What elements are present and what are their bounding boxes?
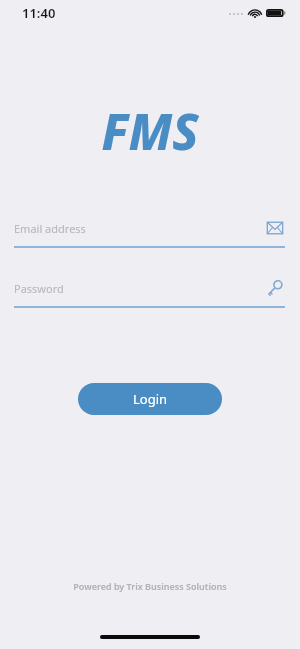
button[interactable]: Email <box>262 215 288 241</box>
staticText: 11:40 <box>22 4 56 22</box>
button[interactable]: Login <box>78 383 222 415</box>
staticText: Powered by Trix Business Solutions <box>0 580 300 592</box>
staticText: FMS <box>0 98 300 165</box>
button[interactable]: Password <box>262 275 288 301</box>
staticText: Password <box>14 281 64 296</box>
staticText: Login <box>133 390 168 408</box>
staticText: Email address <box>14 221 86 236</box>
